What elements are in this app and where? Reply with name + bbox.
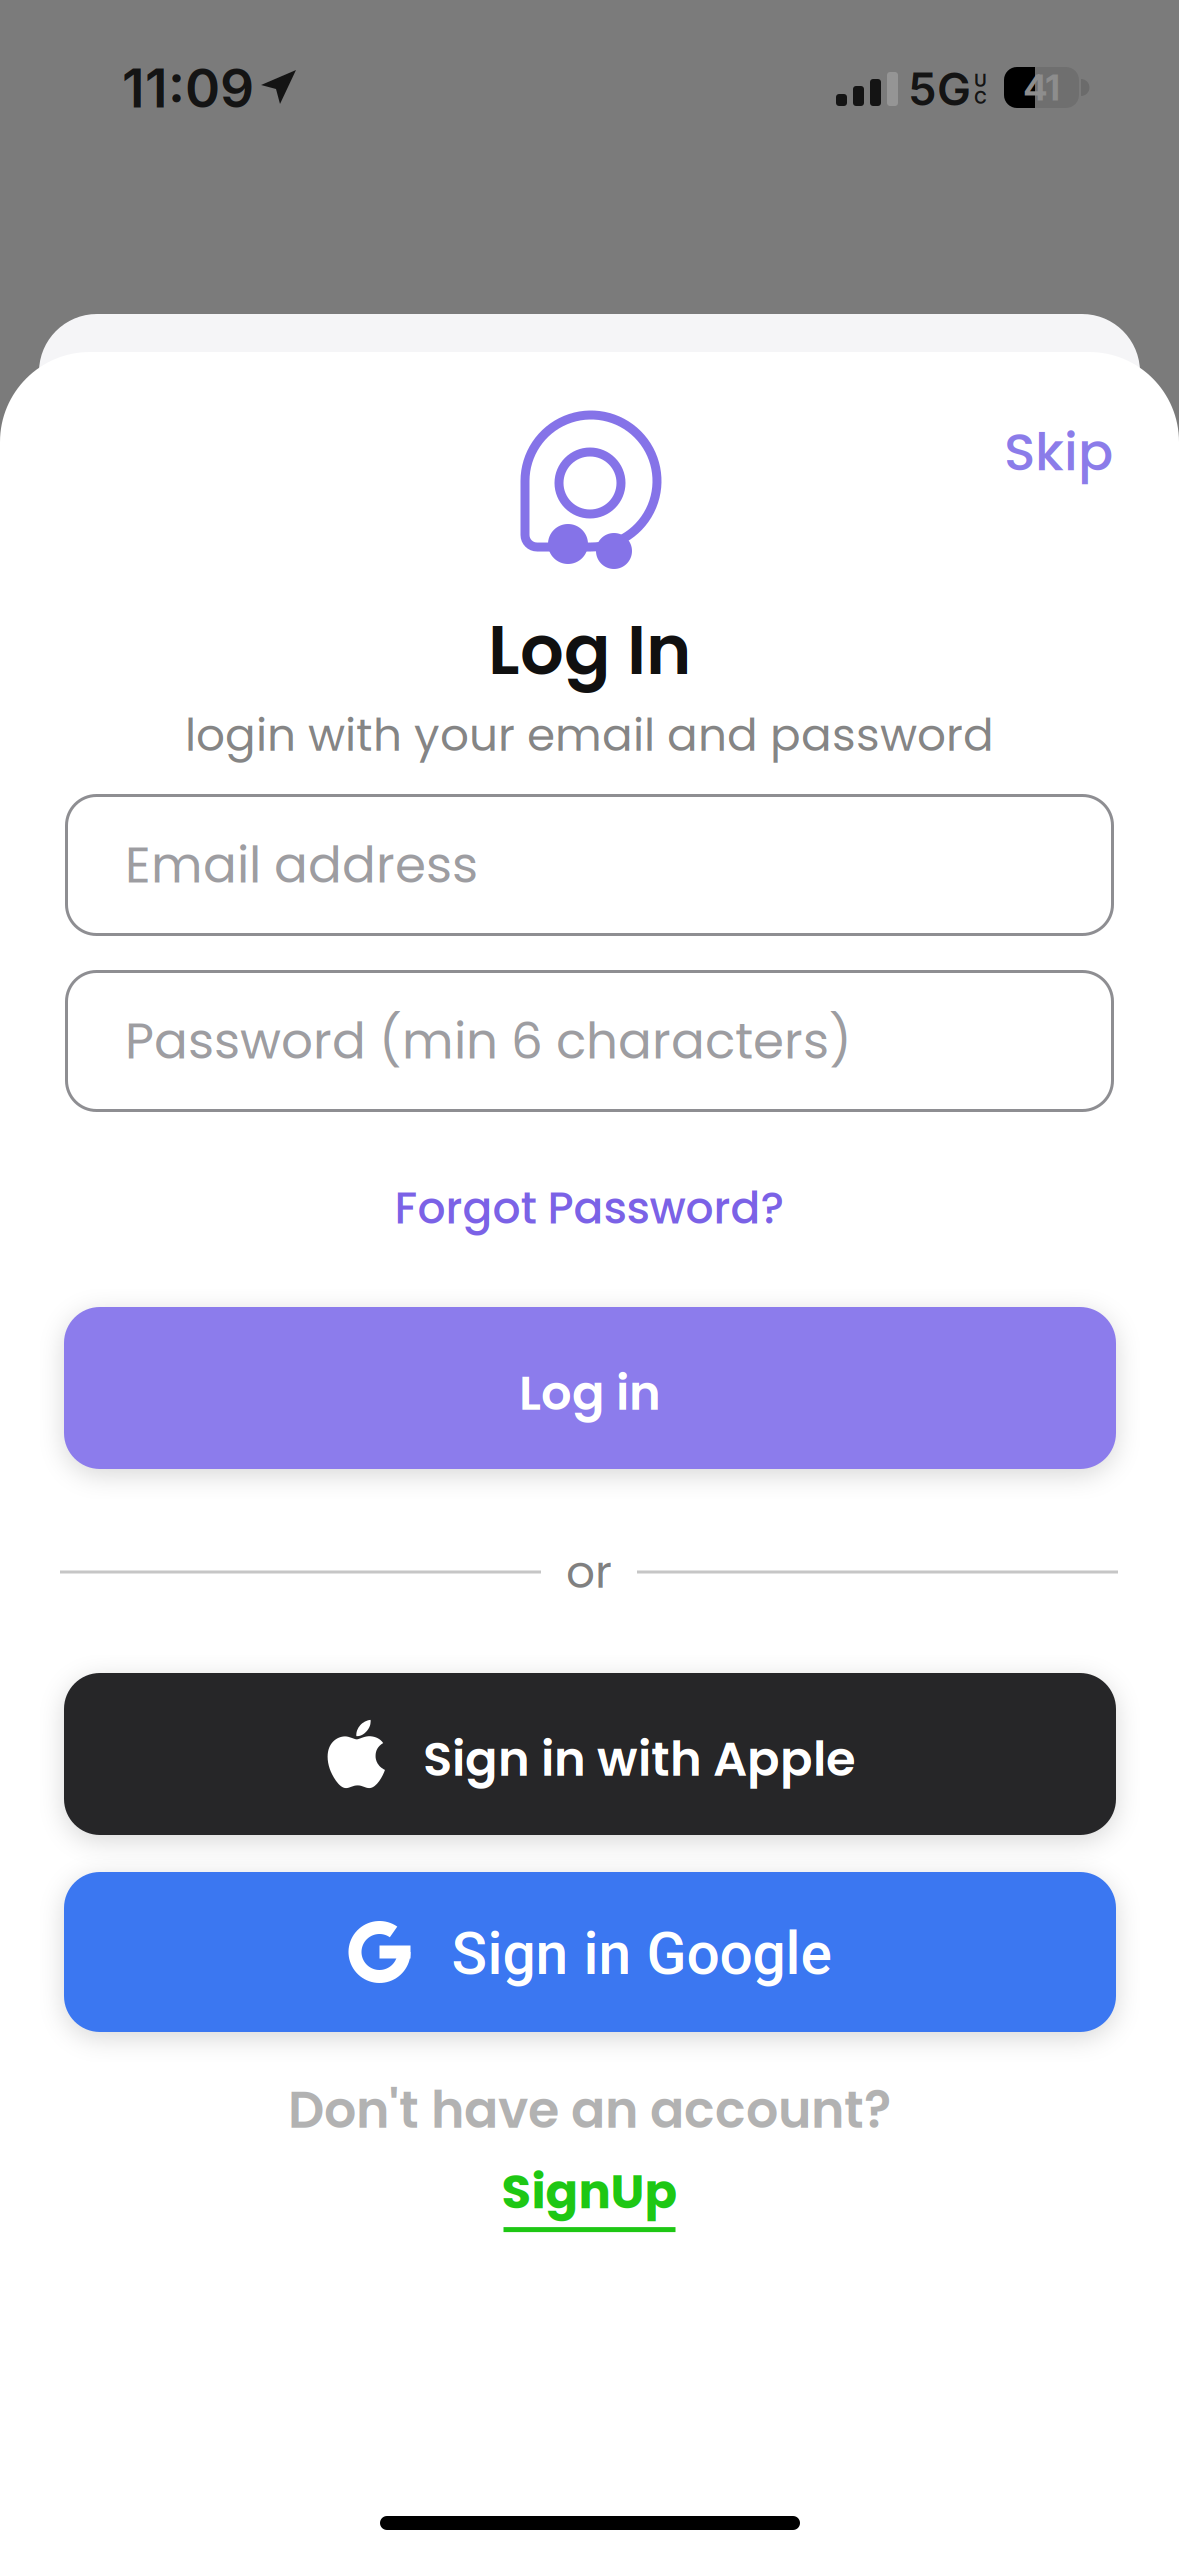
- staticText: Sign in Google: [451, 1920, 831, 1988]
- staticText: Log in: [519, 1359, 661, 1427]
- button[interactable]: Sign in with Apple: [64, 1673, 1116, 1835]
- staticText: Sign in with Apple: [423, 1725, 856, 1793]
- staticText: Don't have an account?: [288, 2074, 891, 2145]
- staticText: 5G: [908, 62, 971, 116]
- staticText: login with your email and password: [185, 703, 994, 767]
- staticText: C: [974, 87, 987, 108]
- button[interactable]: Skip: [0, 412, 1113, 492]
- staticText: Forgot Password?: [394, 1177, 784, 1239]
- button[interactable]: SignUp: [0, 2145, 1179, 2245]
- staticText: Skip: [1004, 416, 1113, 488]
- staticText: SignUp: [501, 2158, 677, 2225]
- button[interactable]: Log in: [64, 1307, 1116, 1469]
- staticText: U: [974, 70, 987, 91]
- staticText: 11:09: [122, 56, 254, 120]
- button[interactable]: Forgot Password?: [0, 1168, 1179, 1248]
- staticText: 41: [1023, 66, 1059, 109]
- staticText: or: [566, 1540, 612, 1604]
- button[interactable]: Sign in Google: [64, 1872, 1116, 2032]
- staticText: Password (min 6 characters): [125, 1006, 852, 1076]
- staticText: Email address: [125, 830, 478, 900]
- staticText: Log In: [488, 602, 691, 698]
